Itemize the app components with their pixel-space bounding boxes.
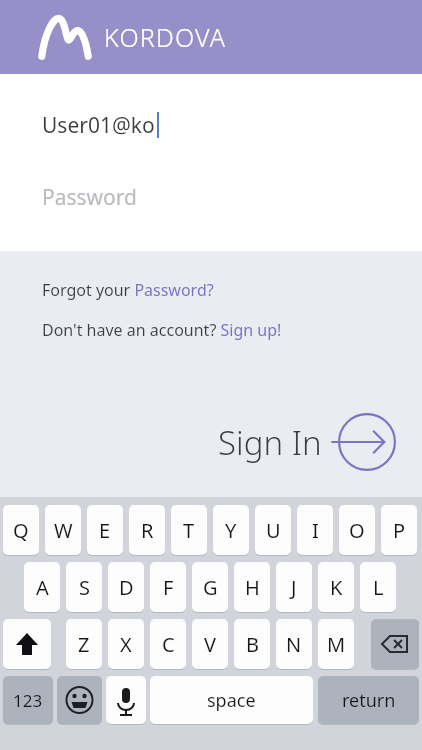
staticText: W <box>54 517 73 544</box>
button[interactable]: Emoji <box>57 676 102 724</box>
staticText: I <box>312 517 319 544</box>
staticText: K <box>330 574 343 601</box>
button[interactable]: L <box>360 562 396 612</box>
staticText: D <box>119 574 134 601</box>
button[interactable]: Y <box>213 505 249 555</box>
button[interactable]: User01@ko <box>0 89 422 161</box>
button[interactable]: B <box>234 619 270 669</box>
button[interactable]: Q <box>3 505 39 555</box>
staticText: Sign In <box>218 420 322 465</box>
staticText: User01@ko <box>42 111 155 140</box>
staticText: N <box>286 631 302 658</box>
button[interactable]: Forgot your Password? <box>42 279 214 301</box>
staticText: V <box>204 631 216 658</box>
staticText: E <box>99 517 111 544</box>
button[interactable]: M <box>318 619 354 669</box>
staticText: F <box>163 574 174 601</box>
button[interactable]: U <box>255 505 291 555</box>
button[interactable]: Don't have an account? Sign up! <box>42 319 282 341</box>
button[interactable]: Password <box>0 161 422 233</box>
staticText: H <box>245 574 260 601</box>
staticText: Z <box>78 631 90 658</box>
staticText: Password <box>42 183 137 212</box>
button[interactable]: X <box>108 619 144 669</box>
staticText: T <box>183 517 195 544</box>
button[interactable]: A <box>24 562 60 612</box>
button[interactable]: D <box>108 562 144 612</box>
button[interactable]: V <box>192 619 228 669</box>
staticText: M <box>327 631 346 658</box>
button[interactable]: P <box>381 505 417 555</box>
staticText: O <box>349 517 365 544</box>
staticText: A <box>36 574 49 601</box>
button[interactable]: E <box>87 505 123 555</box>
button[interactable]: R <box>129 505 165 555</box>
button[interactable]: F <box>150 562 186 612</box>
staticText: KORDOVA <box>104 20 227 54</box>
staticText: G <box>203 574 218 601</box>
staticText: U <box>266 517 281 544</box>
staticText: S <box>79 574 90 601</box>
button[interactable]: H <box>234 562 270 612</box>
button[interactable]: return <box>318 676 419 724</box>
staticText: R <box>141 517 154 544</box>
staticText: return <box>342 688 396 713</box>
other: Sign In <box>336 411 398 473</box>
button[interactable]: Z <box>66 619 102 669</box>
staticText: space <box>207 688 256 713</box>
button[interactable]: J <box>276 562 312 612</box>
button[interactable]: space <box>150 676 313 724</box>
staticText: Don't have an account? Sign up! <box>42 319 282 341</box>
staticText: B <box>246 631 259 658</box>
button[interactable]: Backspace <box>371 619 419 669</box>
button[interactable]: O <box>339 505 375 555</box>
staticText: Y <box>225 517 237 544</box>
button[interactable]: T <box>171 505 207 555</box>
staticText: L <box>373 574 384 601</box>
staticText: P <box>393 517 406 544</box>
staticText: J <box>291 574 297 601</box>
button[interactable]: S <box>66 562 102 612</box>
button[interactable]: Shift <box>3 619 51 669</box>
staticText: 123 <box>13 689 43 712</box>
button[interactable]: Sign In <box>218 411 398 473</box>
button[interactable]: N <box>276 619 312 669</box>
button[interactable]: W <box>45 505 81 555</box>
staticText: Q <box>13 517 29 544</box>
staticText: Forgot your Password? <box>42 279 214 301</box>
staticText: X <box>120 631 132 658</box>
button[interactable]: C <box>150 619 186 669</box>
button[interactable]: 123 <box>3 676 53 724</box>
button[interactable]: K <box>318 562 354 612</box>
button[interactable]: G <box>192 562 228 612</box>
button[interactable]: Dictate <box>106 676 146 724</box>
button[interactable]: I <box>297 505 333 555</box>
staticText: C <box>162 631 175 658</box>
